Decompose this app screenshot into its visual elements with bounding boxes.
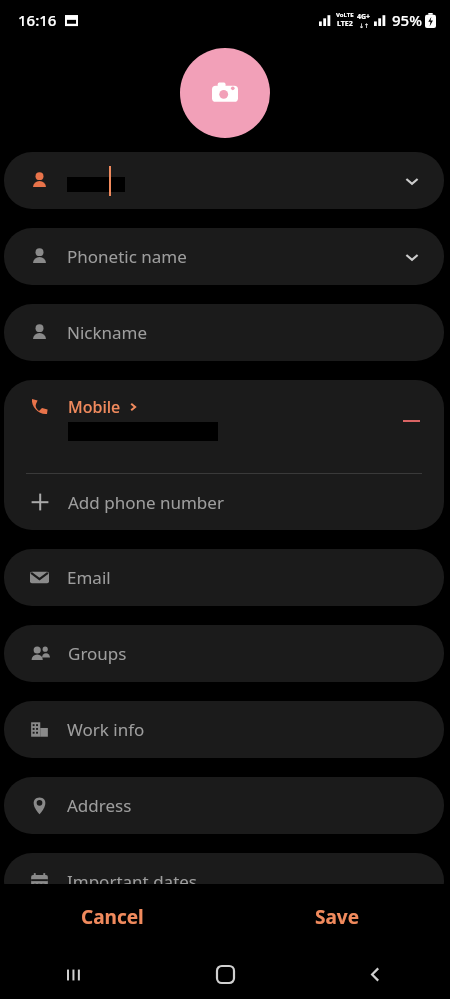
button[interactable]: Remove phone number <box>398 408 424 434</box>
staticText: LTE2 <box>337 19 353 29</box>
staticText: Email <box>67 566 111 589</box>
button[interactable]: Groups <box>4 625 444 682</box>
staticText: Cancel <box>81 904 144 930</box>
other: Expand <box>402 247 422 267</box>
staticText: Important dates <box>67 870 198 893</box>
staticText: ↓↑ <box>359 22 370 29</box>
button[interactable]: Back <box>300 950 450 999</box>
button[interactable]: Mobile <box>4 380 444 530</box>
button[interactable]: Add phone number <box>4 474 444 530</box>
staticText: Groups <box>68 642 127 665</box>
button[interactable]: Save <box>225 884 450 950</box>
button[interactable]: Cancel <box>0 884 225 950</box>
staticText: 4G+ <box>357 12 371 22</box>
other: Expand <box>402 171 422 191</box>
button[interactable]: Email <box>4 549 444 606</box>
button[interactable]: Work info <box>4 701 444 758</box>
button[interactable]: Change contact photo <box>180 48 270 138</box>
button[interactable]: Important dates <box>4 853 444 910</box>
staticText: Nickname <box>67 321 148 344</box>
button[interactable]: Address <box>4 777 444 834</box>
staticText: Address <box>67 794 132 817</box>
button[interactable]: Home <box>150 950 300 999</box>
staticText: Phonetic name <box>67 245 187 268</box>
staticText: Save <box>315 904 360 930</box>
staticText: 95% <box>392 10 422 30</box>
button[interactable]: Nickname <box>4 304 444 361</box>
button[interactable]: Phonetic name <box>4 228 444 285</box>
staticText: Work info <box>67 718 145 741</box>
button[interactable]: Recents <box>0 950 150 999</box>
staticText: VoLTE <box>336 11 354 19</box>
button[interactable]: Expand <box>4 152 444 209</box>
staticText: Mobile <box>68 396 121 418</box>
staticText: 16:16 <box>18 10 57 30</box>
staticText: Add phone number <box>68 491 224 514</box>
